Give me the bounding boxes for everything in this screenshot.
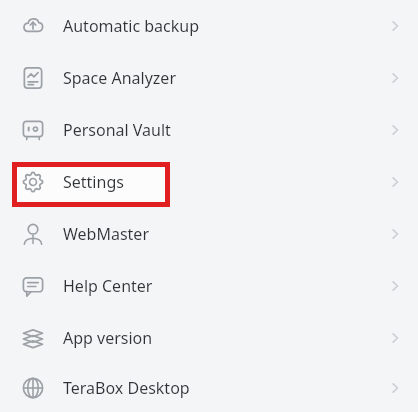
button[interactable]: Space Analyzer <box>0 52 418 104</box>
button[interactable]: Help Center <box>0 260 418 312</box>
staticText: Help Center <box>63 275 153 297</box>
button[interactable]: Automatic backup <box>0 0 418 52</box>
staticText: App version <box>63 327 153 349</box>
staticText: Personal Vault <box>63 119 171 141</box>
staticText: Automatic backup <box>63 15 200 37</box>
button[interactable]: Personal Vault <box>0 104 418 156</box>
staticText: Space Analyzer <box>63 67 176 89</box>
button[interactable]: TeraBox Desktop <box>0 364 418 412</box>
staticText: TeraBox Desktop <box>63 377 190 399</box>
button[interactable]: App version <box>0 312 418 364</box>
button[interactable]: Settings <box>0 156 418 208</box>
staticText: WebMaster <box>63 223 149 245</box>
staticText: Settings <box>63 171 124 193</box>
button[interactable]: WebMaster <box>0 208 418 260</box>
